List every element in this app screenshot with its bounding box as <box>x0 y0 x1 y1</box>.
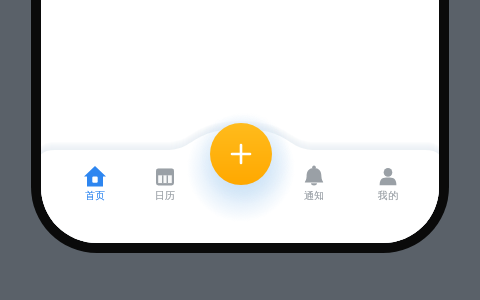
button[interactable]: 日历 <box>133 161 197 207</box>
staticText: 通知 <box>304 189 324 202</box>
button[interactable]: 我的 <box>356 161 420 207</box>
staticText: 首页 <box>85 189 105 202</box>
staticText: 我的 <box>378 189 398 202</box>
button[interactable]: 通知 <box>282 161 346 207</box>
button[interactable]: Add <box>210 123 272 185</box>
staticText: 日历 <box>155 189 175 202</box>
button[interactable]: 首页 <box>63 161 127 207</box>
